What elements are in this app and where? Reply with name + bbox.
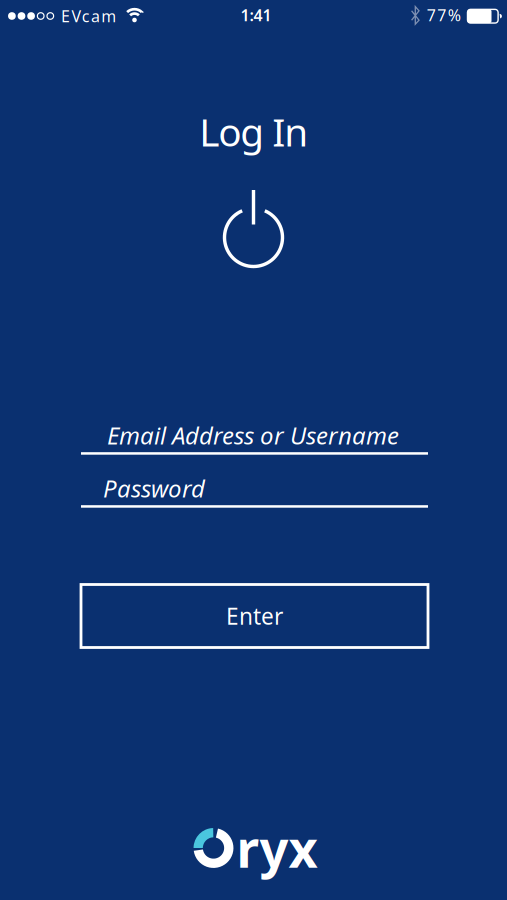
staticText: ryx [236, 814, 317, 882]
staticText: Email Address or Username [107, 419, 399, 451]
staticText: EVcam [61, 5, 116, 27]
button[interactable]: Enter [81, 584, 428, 647]
staticText: 77% [427, 4, 461, 26]
button[interactable]: Email Address or Username [81, 419, 428, 455]
staticText: Enter [226, 601, 283, 631]
staticText: Log In [199, 106, 308, 157]
button[interactable]: Password [81, 472, 428, 508]
staticText: Password [103, 472, 205, 504]
staticText: 1:41 [240, 4, 271, 26]
